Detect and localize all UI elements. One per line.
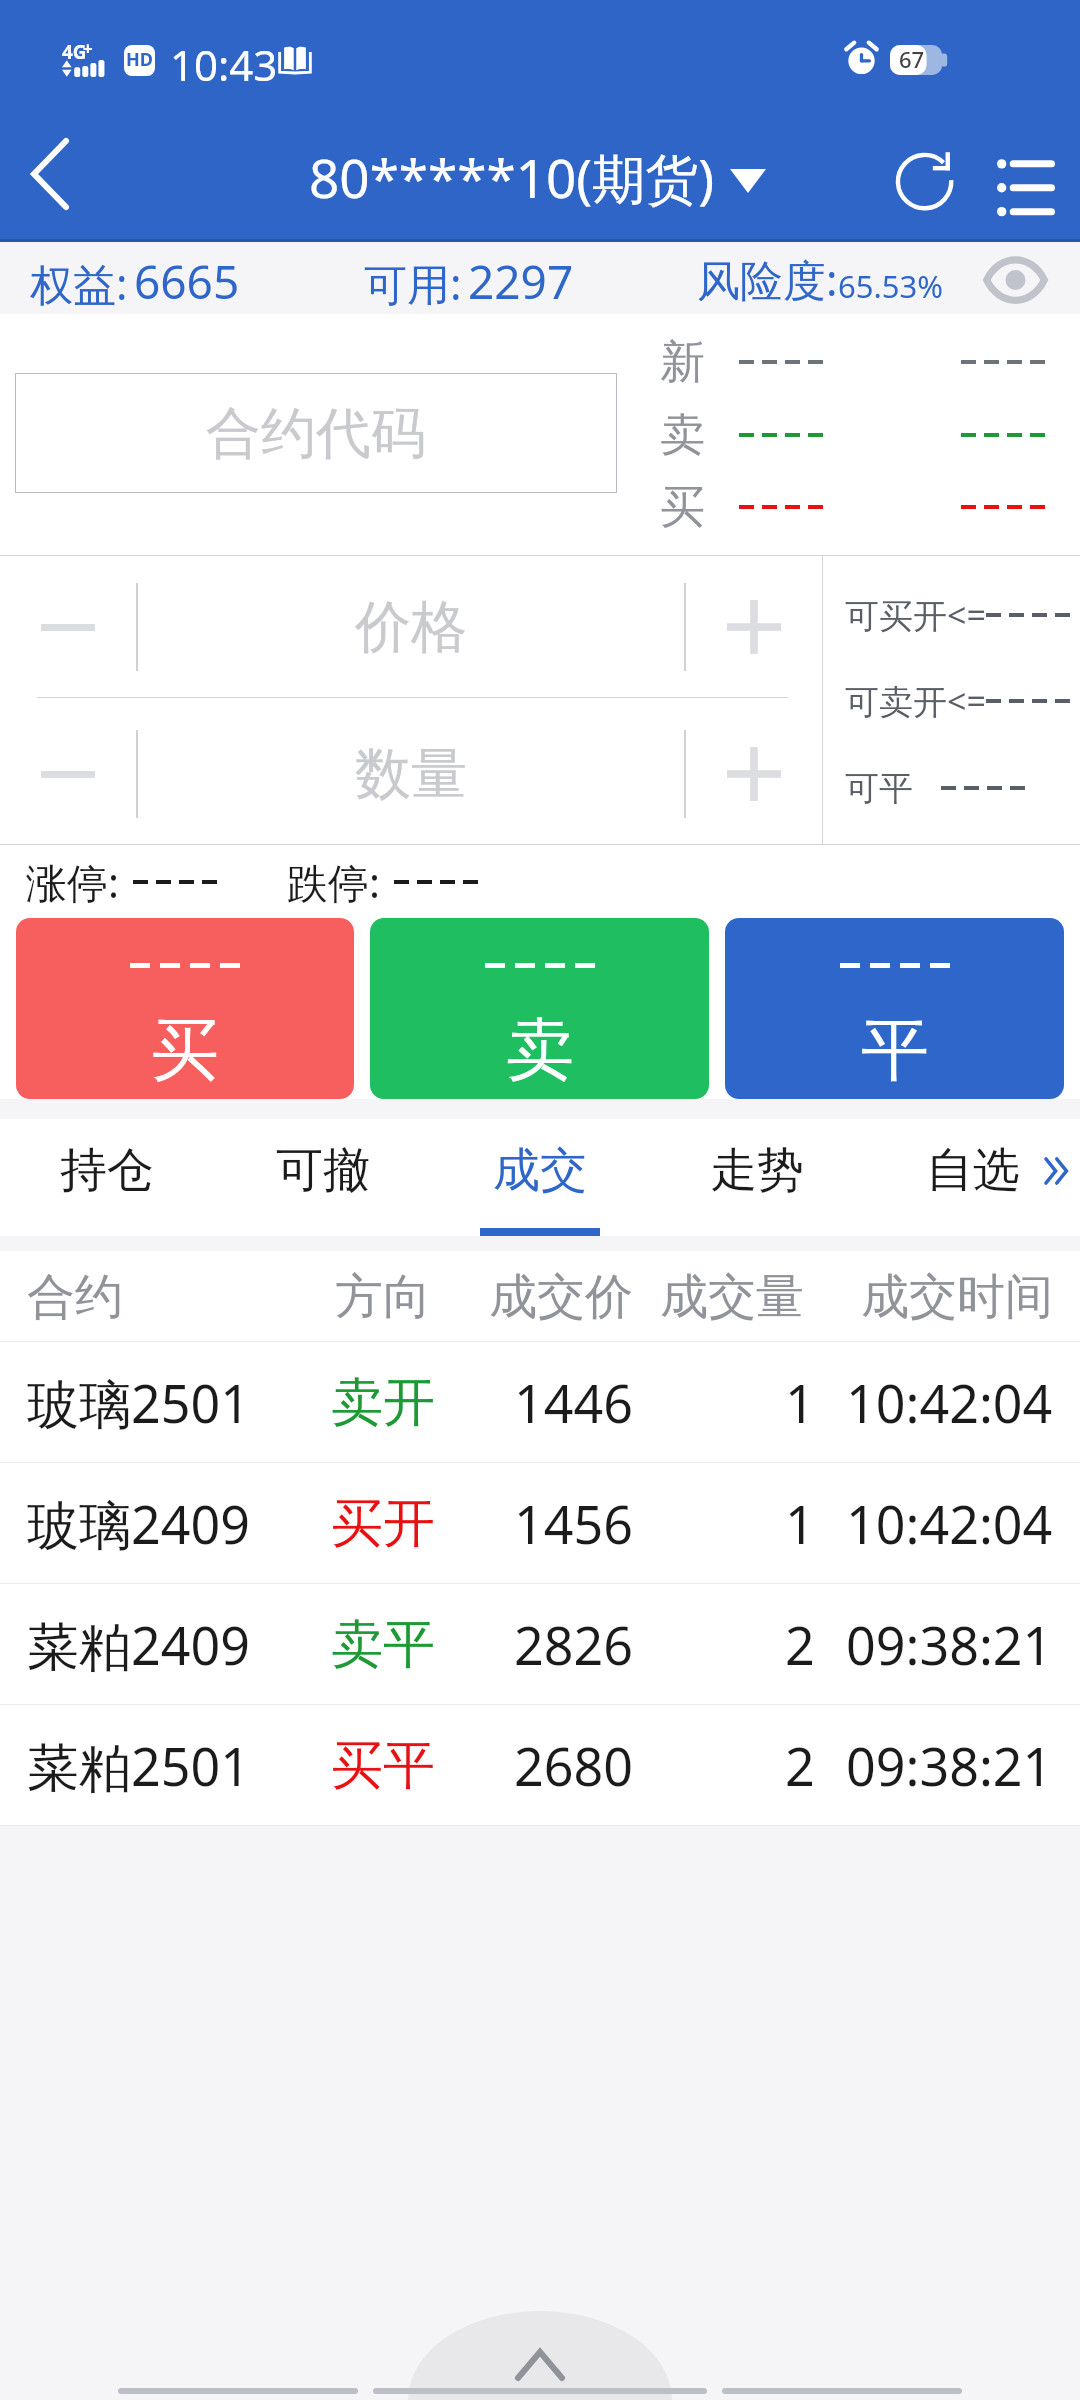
staticText: 菜粕2409	[27, 1609, 250, 1680]
staticText: 买开	[331, 1491, 435, 1557]
staticText: 4G	[62, 39, 87, 65]
staticText: 1446	[514, 1367, 633, 1438]
staticText: 风险度:	[697, 250, 838, 309]
staticText: 2	[785, 1730, 815, 1801]
staticText: 涨停:	[26, 854, 119, 910]
staticText: 数量	[355, 739, 467, 810]
button[interactable]: 平	[725, 918, 1064, 1099]
staticText: 价格	[355, 592, 467, 663]
button[interactable]: 可撤	[215, 1119, 431, 1236]
staticText: 平	[861, 1008, 929, 1094]
staticText: 成交价	[489, 1267, 633, 1327]
staticText: 买	[151, 1008, 219, 1094]
staticText: 10:43	[170, 36, 278, 93]
button[interactable]: Decrease	[0, 556, 136, 698]
staticText: 买	[660, 479, 705, 536]
button[interactable]: 成交	[432, 1119, 648, 1236]
staticText: 自选	[926, 1141, 1020, 1200]
staticText: 1456	[514, 1488, 633, 1559]
button[interactable]: 玻璃2501	[0, 1342, 1080, 1463]
staticText: 67	[899, 44, 925, 74]
button[interactable]: 持仓	[0, 1119, 215, 1236]
staticText: 玻璃2501	[27, 1367, 250, 1438]
staticText: HD	[126, 47, 153, 72]
staticText: 玻璃2409	[27, 1488, 250, 1559]
staticText: 80*****10(期货)	[309, 141, 715, 213]
button[interactable]: 卖	[370, 918, 709, 1099]
staticText: 2	[785, 1609, 815, 1680]
staticText: 卖平	[331, 1612, 435, 1678]
staticText: 10:42:04	[846, 1488, 1053, 1559]
staticText: 可平	[845, 767, 913, 810]
button[interactable]: 自选	[865, 1119, 1080, 1236]
staticText: 走势	[710, 1141, 804, 1200]
staticText: 2826	[514, 1609, 633, 1680]
staticText: 卖	[660, 407, 705, 464]
button[interactable]: Decrease	[0, 703, 136, 845]
staticText: 成交量	[660, 1267, 804, 1327]
button[interactable]: Toggle balance visibility	[975, 242, 1057, 311]
button[interactable]: Increase	[686, 703, 822, 845]
staticText: 09:38:21	[846, 1609, 1053, 1680]
staticText: 成交	[493, 1141, 587, 1200]
button[interactable]: Refresh	[877, 131, 973, 231]
staticText: 跌停:	[287, 854, 380, 910]
staticText: 2297	[468, 250, 574, 313]
staticText: 2680	[514, 1730, 633, 1801]
staticText: 10:42:04	[846, 1367, 1053, 1438]
staticText: 持仓	[60, 1141, 154, 1200]
staticText: 可用:	[364, 254, 462, 313]
staticText: 卖开	[331, 1370, 435, 1436]
staticText: 成交时间	[861, 1267, 1053, 1327]
staticText: 合约代码	[206, 399, 426, 468]
staticText: 合约	[27, 1267, 123, 1327]
staticText: 可买开<=	[845, 592, 986, 638]
staticText: 卖	[506, 1008, 574, 1094]
staticText: +	[83, 37, 93, 60]
button[interactable]: 玻璃2409	[0, 1463, 1080, 1584]
staticText: 09:38:21	[846, 1730, 1053, 1801]
staticText: 菜粕2501	[27, 1730, 250, 1801]
staticText: 6665	[134, 250, 240, 313]
button[interactable]: 菜粕2501	[0, 1705, 1080, 1826]
button[interactable]: 买	[16, 918, 354, 1099]
button[interactable]: Menu	[978, 131, 1074, 231]
button[interactable]: Expand panel	[408, 2311, 672, 2400]
staticText: 可卖开<=	[845, 678, 986, 724]
button[interactable]: 数量	[138, 703, 684, 845]
button[interactable]: Back	[0, 120, 100, 242]
staticText: 方向	[335, 1267, 431, 1327]
staticText: 权益:	[30, 254, 128, 313]
button[interactable]: 菜粕2409	[0, 1584, 1080, 1705]
staticText: 新	[660, 334, 705, 391]
staticText: 1	[785, 1488, 815, 1559]
button[interactable]: 走势	[649, 1119, 865, 1236]
button[interactable]: 价格	[138, 556, 684, 698]
staticText: 1	[785, 1367, 815, 1438]
staticText: 买平	[331, 1733, 435, 1799]
button[interactable]: 合约代码	[15, 373, 617, 493]
staticText: 可撤	[276, 1141, 370, 1200]
button[interactable]: Increase	[686, 556, 822, 698]
staticText: 65.53%	[838, 265, 943, 307]
